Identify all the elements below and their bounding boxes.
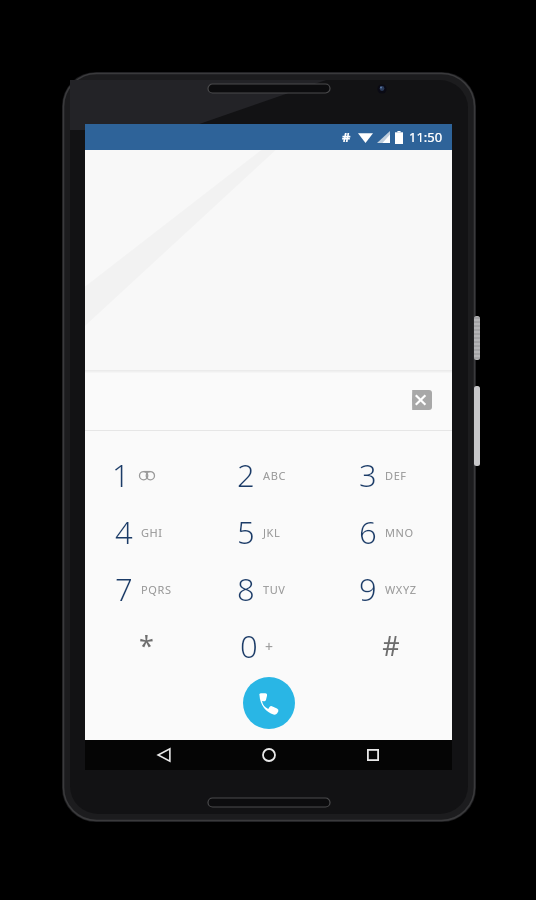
staticText: DEF — [385, 468, 407, 483]
button[interactable]: Call — [243, 677, 295, 729]
staticText: TUV — [263, 582, 286, 597]
staticText: 3 — [359, 454, 377, 496]
staticText: + — [265, 637, 274, 656]
staticText: ABC — [263, 468, 286, 483]
button[interactable]: 5 — [208, 503, 330, 560]
button[interactable]: Recent apps — [347, 740, 399, 770]
button[interactable]: 2 — [208, 446, 330, 503]
staticText: 11:50 — [409, 128, 443, 146]
staticText: 7 — [115, 568, 133, 610]
staticText: WXYZ — [385, 582, 417, 597]
staticText: 5 — [237, 511, 255, 553]
staticText: 1 — [112, 454, 130, 496]
button[interactable]: Home — [243, 740, 295, 770]
button[interactable]: 8 — [208, 560, 330, 617]
button[interactable]: 9 — [330, 560, 452, 617]
staticText: JKL — [263, 525, 281, 540]
staticText: 2 — [237, 454, 255, 496]
button[interactable]: 4 — [85, 503, 208, 560]
button[interactable]: 0 — [208, 617, 330, 674]
staticText: MNO — [385, 525, 414, 540]
button[interactable]: Back — [138, 740, 190, 770]
staticText: PQRS — [141, 582, 172, 597]
button[interactable]: 6 — [330, 503, 452, 560]
staticText: # — [342, 128, 351, 146]
staticText: 4 — [115, 511, 133, 553]
staticText: 9 — [359, 568, 377, 610]
staticText: # — [382, 627, 400, 664]
button[interactable]: * — [85, 617, 208, 674]
button[interactable]: Delete — [394, 380, 440, 420]
staticText: 6 — [359, 511, 377, 553]
button[interactable]: 7 — [85, 560, 208, 617]
staticText: 0 — [240, 625, 258, 667]
staticText: 8 — [237, 568, 255, 610]
button[interactable]: 3 — [330, 446, 452, 503]
button[interactable]: 1 — [85, 446, 208, 503]
staticText: * — [139, 627, 154, 664]
button[interactable]: # — [330, 617, 452, 674]
staticText: GHI — [141, 525, 163, 540]
